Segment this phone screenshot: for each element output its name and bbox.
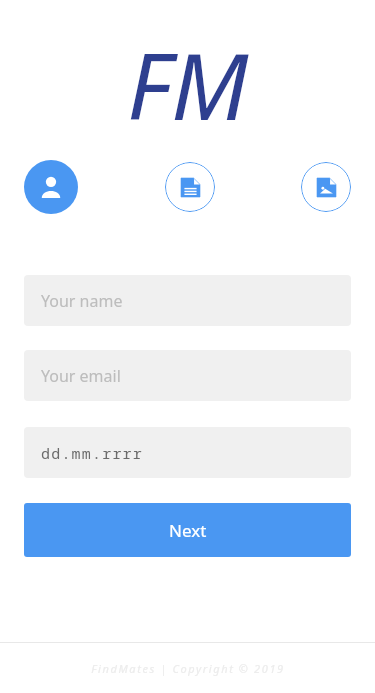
staticText: Your email: [41, 365, 121, 387]
button[interactable]: Personal details step: [24, 160, 78, 214]
staticText: dd.mm.rrrr: [41, 443, 144, 463]
button[interactable]: Your email: [24, 350, 351, 401]
button[interactable]: Next: [24, 503, 351, 557]
button[interactable]: dd.mm.rrrr: [24, 427, 351, 478]
staticText: FM: [127, 22, 249, 147]
staticText: Next: [169, 519, 207, 542]
button[interactable]: Document step: [165, 162, 215, 212]
button[interactable]: Photo document step: [301, 162, 351, 212]
button[interactable]: Your name: [24, 275, 351, 326]
staticText: Your name: [41, 290, 123, 312]
staticText: FindMates | Copyright © 2019: [91, 661, 285, 676]
